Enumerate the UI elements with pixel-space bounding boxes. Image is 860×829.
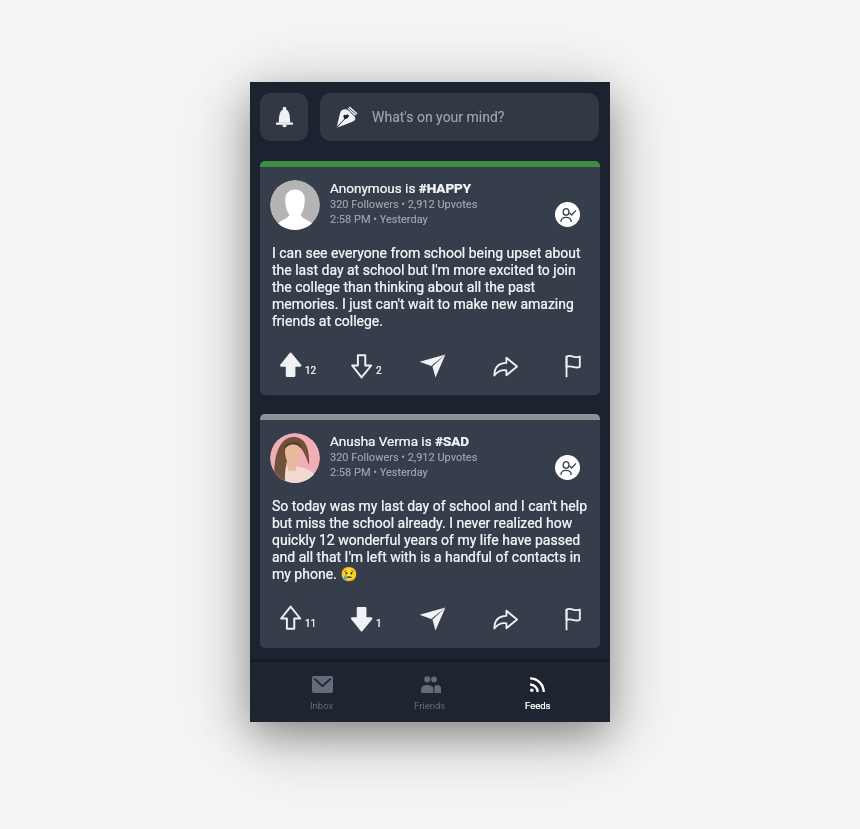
staticText: 1 (376, 618, 382, 630)
button[interactable]: Downvote (351, 605, 382, 632)
staticText: So today was my last day of school and I… (272, 497, 588, 582)
button[interactable]: Follow user (555, 455, 580, 480)
staticText: Feeds (525, 700, 551, 711)
button[interactable]: Notifications (260, 93, 308, 141)
staticText: Inbox (310, 700, 334, 711)
staticText: What's on your mind? (372, 109, 505, 125)
staticText: I can see everyone from school being ups… (272, 244, 588, 329)
button[interactable]: Anonymous is #HAPPY (260, 161, 600, 395)
button[interactable]: Follow user (555, 202, 580, 227)
button[interactable]: Send (419, 607, 446, 631)
staticText: 2:58 PM • Yesterday (330, 466, 428, 479)
button[interactable]: Upvote (280, 352, 317, 379)
button[interactable]: Upvote (280, 605, 317, 632)
button[interactable]: Inbox (268, 662, 376, 722)
button[interactable]: Downvote (351, 352, 382, 379)
button[interactable]: Anusha Verma is #SAD (260, 414, 600, 648)
staticText: 11 (305, 618, 317, 630)
button[interactable]: Share (491, 354, 519, 378)
staticText: Friends (414, 700, 446, 711)
button[interactable]: Report (564, 354, 582, 378)
staticText: 320 Followers • 2,912 Upvotes (330, 198, 478, 211)
button[interactable]: Report (564, 607, 582, 631)
staticText: 2 (376, 365, 382, 377)
button[interactable]: Feeds (484, 662, 592, 722)
staticText: 320 Followers • 2,912 Upvotes (330, 451, 478, 464)
button[interactable]: Send (419, 354, 446, 378)
button[interactable]: Friends (376, 662, 484, 722)
staticText: 2:58 PM • Yesterday (330, 213, 428, 226)
staticText: 12 (305, 365, 317, 377)
button[interactable]: What's on your mind? (320, 93, 599, 141)
button[interactable]: Share (491, 607, 519, 631)
staticText: Anonymous is #HAPPY (330, 180, 472, 196)
staticText: Anusha Verma is #SAD (330, 433, 470, 449)
